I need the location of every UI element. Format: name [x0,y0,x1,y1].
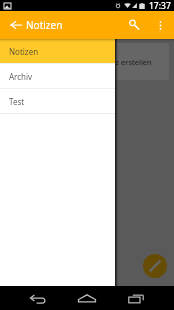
staticText: Notizen [9,46,39,57]
staticText: Neue Notiz erstellen [80,57,152,67]
button[interactable]: Zurück [2,11,29,39]
button[interactable]: Suchen [120,11,148,39]
button[interactable]: Zurück [29,291,47,309]
button[interactable]: Test [0,89,115,113]
staticText: Archiv [9,71,33,82]
staticText: Notizen [26,18,63,32]
button[interactable]: Notizen [0,39,115,63]
button[interactable]: Übersicht [127,290,144,307]
button[interactable]: Weitere Optionen [147,11,173,39]
button[interactable]: Notiz erstellen [143,254,167,278]
button[interactable]: Neue Notiz erstellen [6,43,169,80]
button[interactable]: Archiv [0,64,115,88]
staticText: 17:37 [149,0,171,11]
staticText: Test [9,96,25,107]
button[interactable]: Startbildschirm [77,289,96,308]
